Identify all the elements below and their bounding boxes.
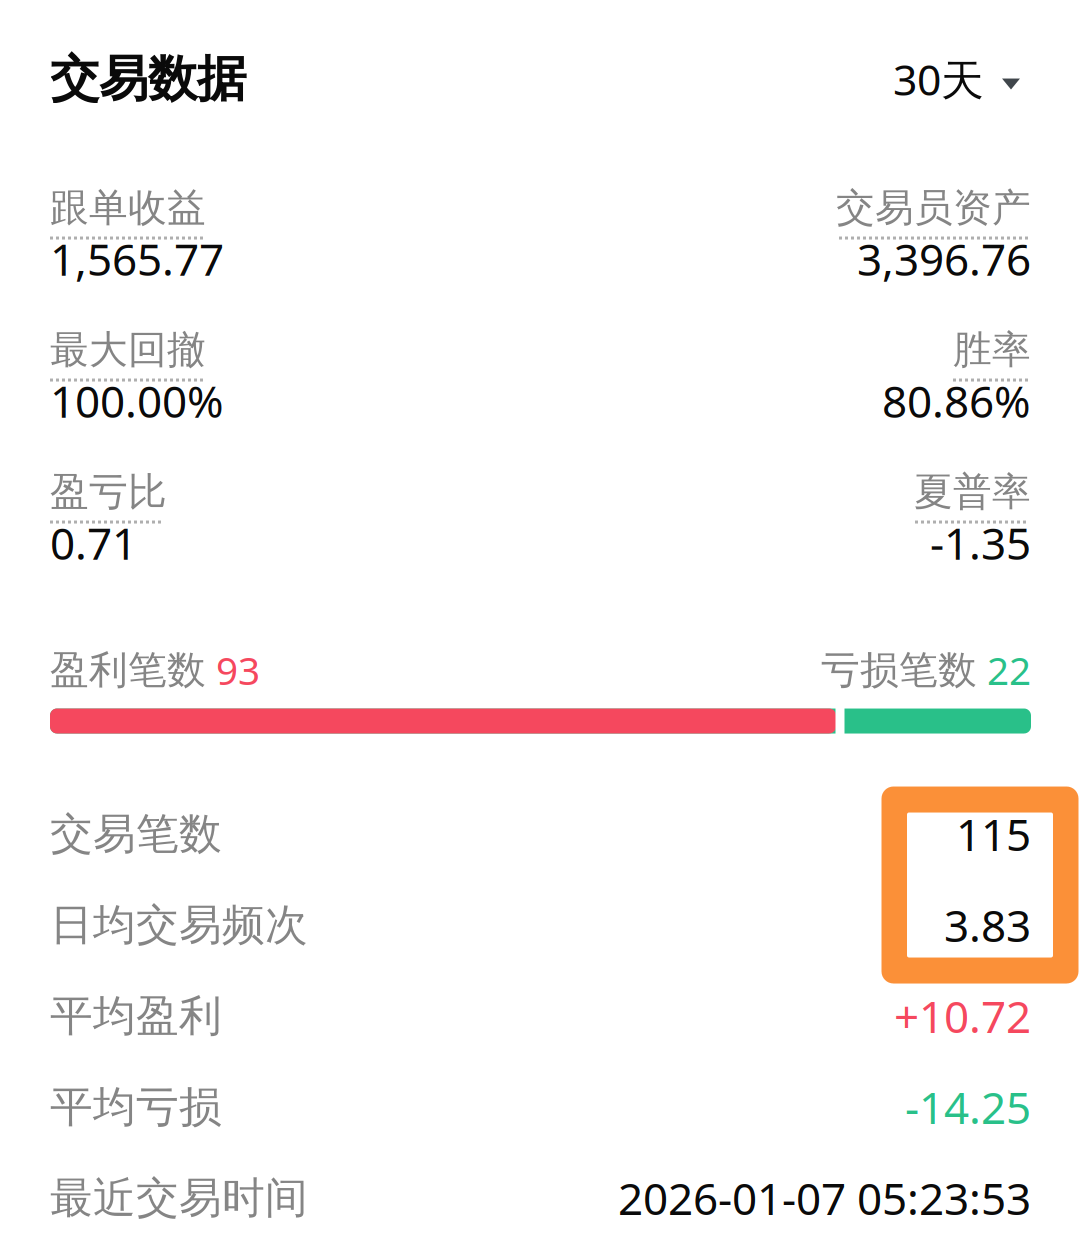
staticText: 交易数据 — [50, 49, 246, 109]
staticText: -1.35 — [930, 513, 1031, 572]
staticText: 100.00% — [50, 371, 224, 430]
staticText: 22 — [977, 644, 1031, 696]
staticText: 盈亏比 — [50, 468, 167, 515]
staticText: 胜率 — [953, 326, 1031, 373]
staticText: 2026-01-07 05:23:53 — [618, 1169, 1031, 1227]
staticText: 交易笔数 — [50, 808, 222, 860]
staticText: 最近交易时间 — [50, 1172, 308, 1224]
staticText: +10.72 — [894, 987, 1031, 1045]
staticText: 80.86% — [882, 371, 1031, 430]
button[interactable]: 交易数据 — [50, 49, 450, 109]
staticText: 交易员资产 — [836, 184, 1031, 231]
staticText: 平均盈利 — [50, 990, 222, 1042]
staticText: 跟单收益 — [50, 184, 206, 231]
staticText: -14.25 — [905, 1078, 1031, 1136]
staticText: 30天 — [893, 51, 984, 107]
button[interactable]: 30天 — [720, 51, 1020, 107]
staticText: 3.83 — [944, 896, 1031, 954]
staticText: 0.71 — [50, 513, 137, 572]
staticText: 115 — [956, 805, 1031, 863]
staticText: 1,565.77 — [50, 229, 224, 288]
staticText: 93 — [206, 644, 260, 696]
staticText: 夏普率 — [914, 468, 1031, 515]
staticText: 亏损笔数 — [821, 646, 977, 694]
staticText: 最大回撤 — [50, 326, 206, 373]
staticText: 日均交易频次 — [50, 899, 308, 951]
staticText: 3,396.76 — [857, 229, 1031, 288]
staticText: 平均亏损 — [50, 1081, 222, 1133]
staticText: 盈利笔数 — [50, 646, 206, 694]
